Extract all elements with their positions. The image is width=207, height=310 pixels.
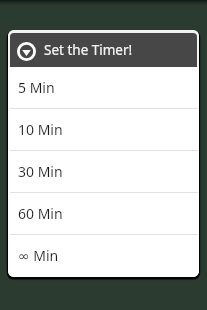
button[interactable]: 10 Min [8,109,199,151]
staticText: ∞ Min [18,246,59,265]
button[interactable]: 5 Min [8,67,199,109]
staticText: 60 Min [18,204,63,223]
button[interactable]: 30 Min [8,151,199,193]
other: Collapse [17,42,36,61]
button[interactable]: 60 Min [8,193,199,235]
staticText: 30 Min [18,162,63,181]
staticText: 5 Min [18,78,55,97]
staticText: 10 Min [18,120,63,139]
button[interactable]: ∞ Min [8,235,199,277]
staticText: Set the Timer! [44,41,133,59]
